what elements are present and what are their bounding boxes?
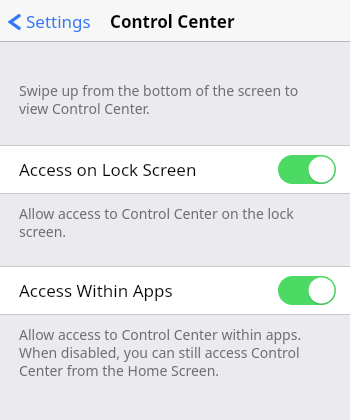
staticText: Access on Lock Screen <box>19 158 197 181</box>
staticText: Allow access to Control Center within ap… <box>19 325 330 380</box>
button[interactable]: Toggle on <box>278 276 336 305</box>
staticText: Control Center <box>110 10 235 33</box>
staticText: Settings <box>26 10 91 33</box>
button[interactable]: Access Within Apps <box>0 267 350 314</box>
button[interactable]: Toggle on <box>278 155 336 184</box>
staticText: Swipe up from the bottom of the screen t… <box>19 81 330 118</box>
staticText: Allow access to Control Center on the lo… <box>19 204 330 241</box>
staticText: Access Within Apps <box>19 279 173 302</box>
button[interactable]: Access on Lock Screen <box>0 146 350 193</box>
button[interactable]: Settings <box>8 10 91 33</box>
